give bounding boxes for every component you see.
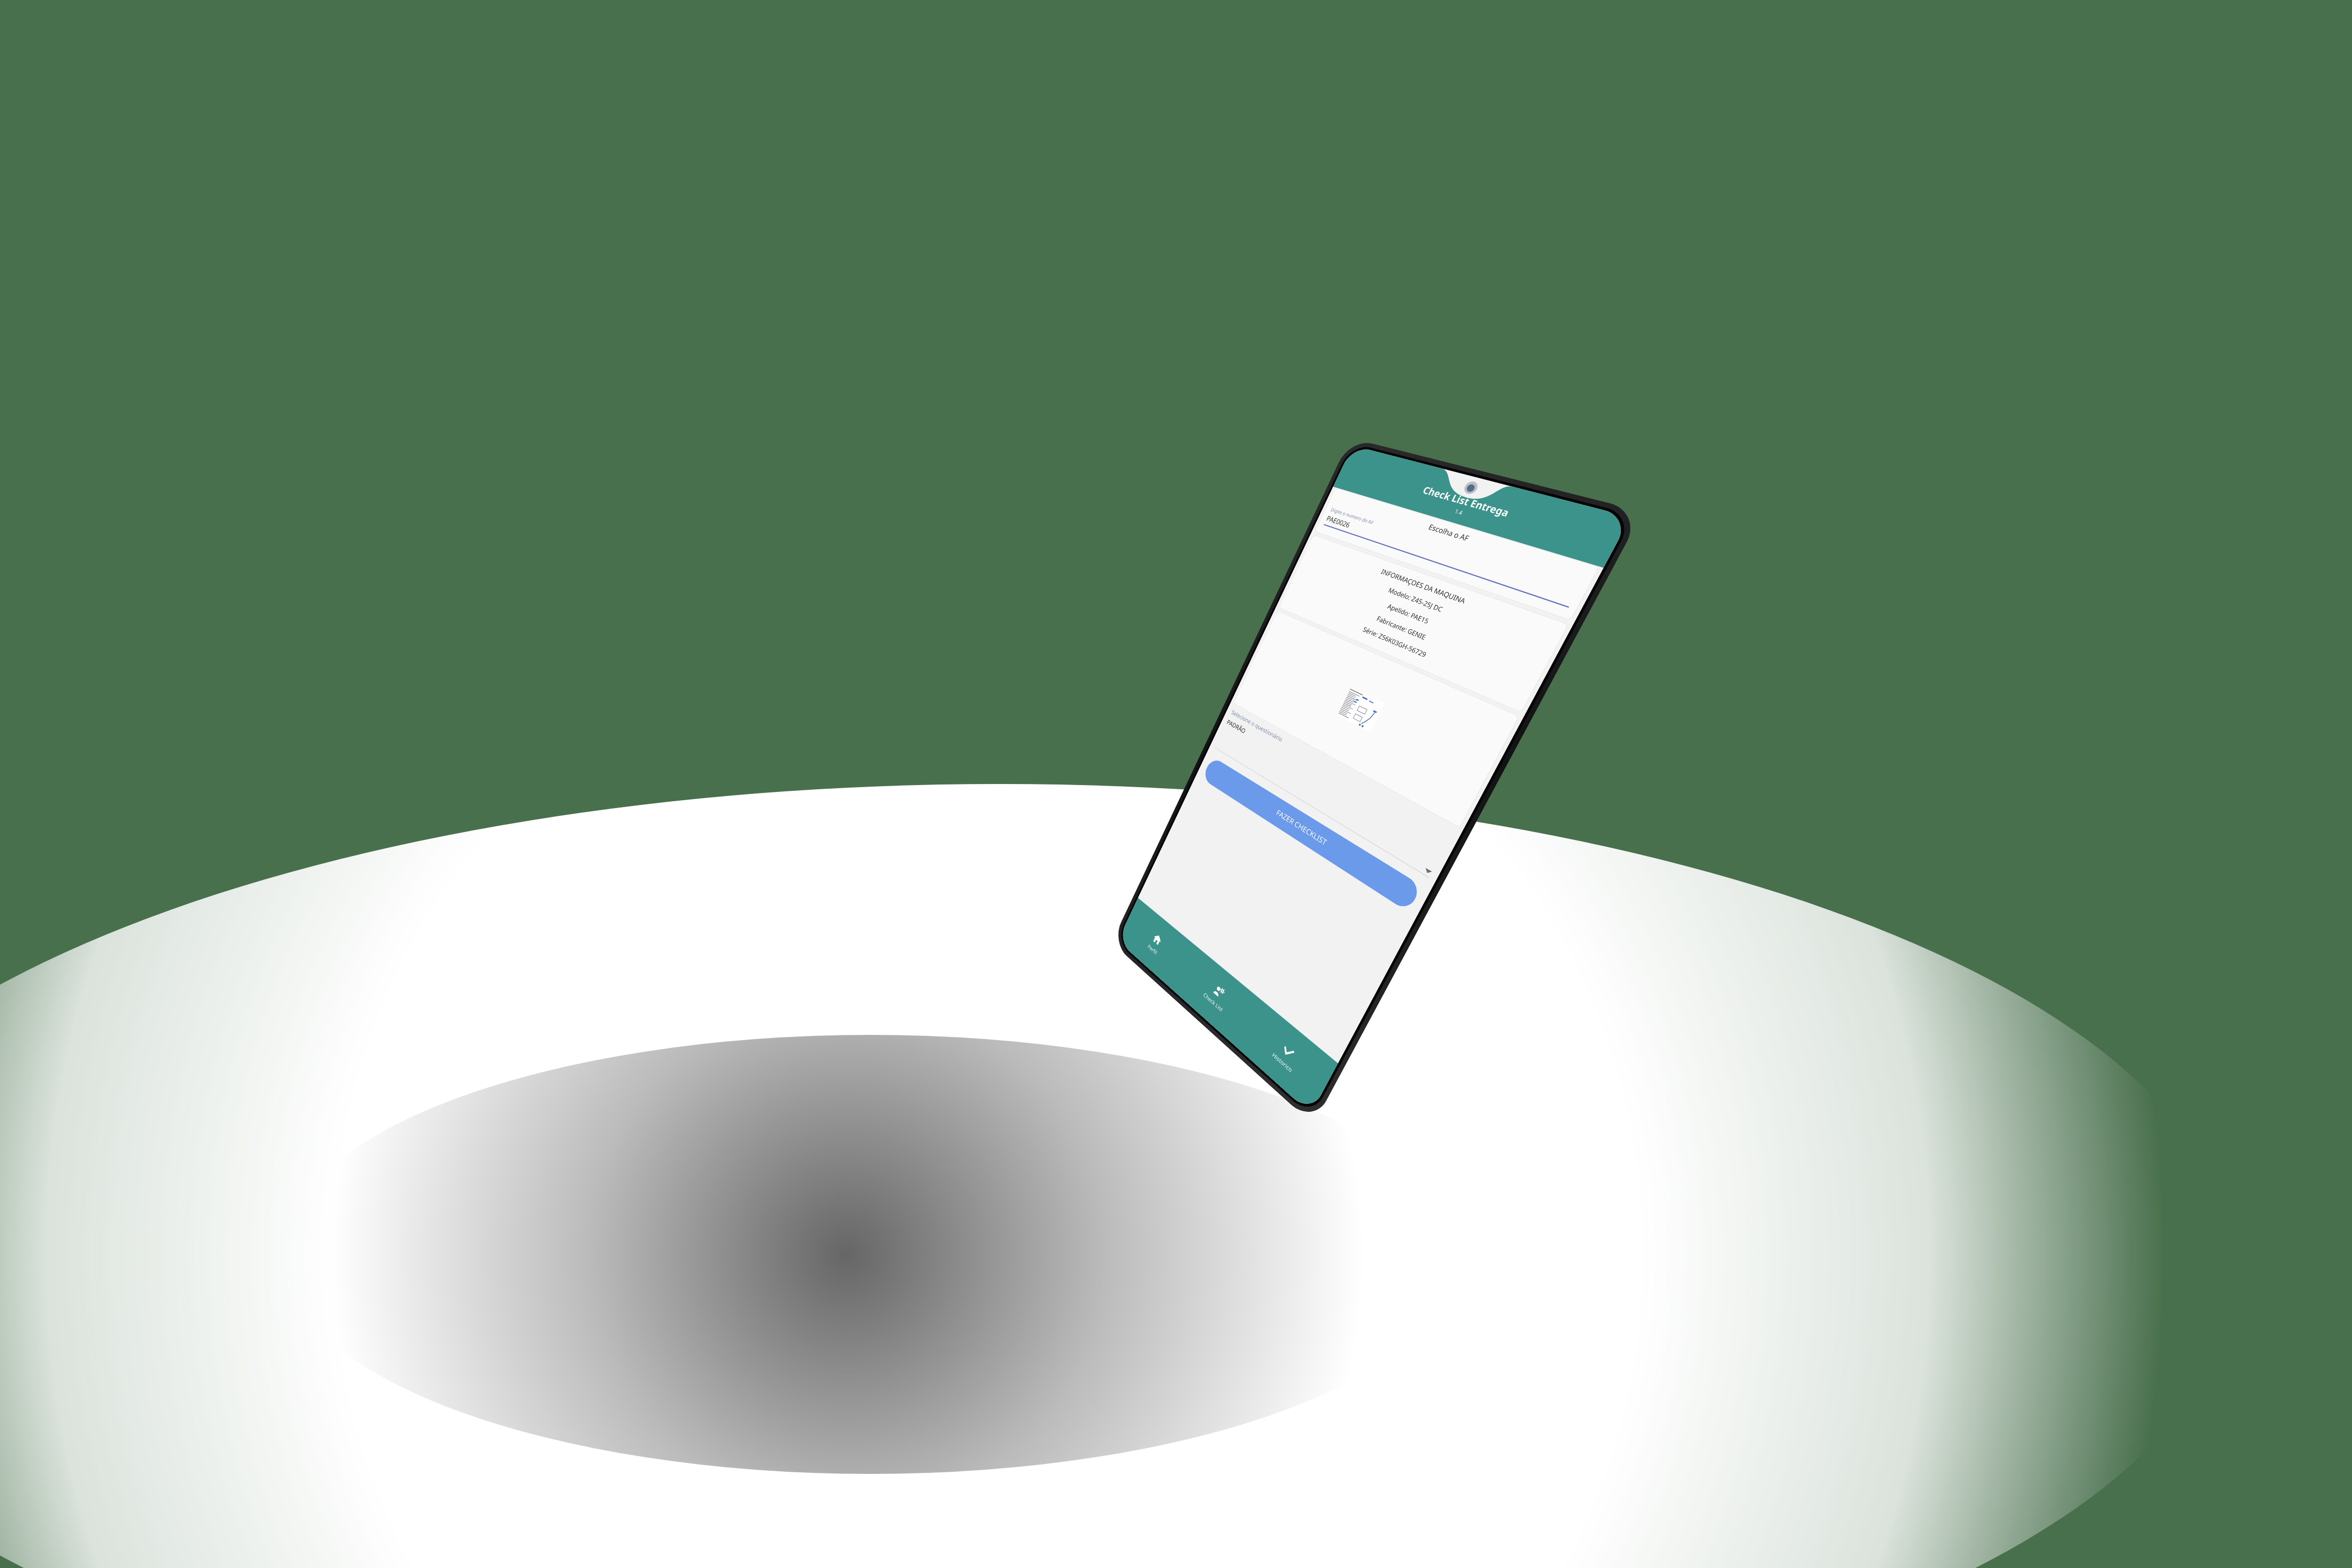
staticText: Historico [1271,1051,1294,1074]
staticText: Escolha o AF [1335,493,1589,580]
staticText: PADRÃO [1226,718,1448,850]
staticText: Apelido: PAE15 [1299,568,1541,669]
staticText: FAZER CHECKLIST [1275,807,1329,848]
button[interactable]: FAZER CHECKLIST [1202,756,1422,912]
staticText: PAE0026 [1325,513,1352,530]
button[interactable]: Historico [1238,1001,1338,1114]
staticText: Selecione o questionário [1230,708,1284,744]
staticText: Fabricante: GENIE [1293,581,1532,684]
button[interactable]: Documento da máquina [1233,610,1520,828]
button[interactable]: Check List [1174,946,1262,1048]
staticText: Perfil [1147,943,1158,956]
button[interactable]: Selecione o questionário [1215,708,1454,878]
button[interactable]: Perfil [1118,898,1196,991]
staticText: INFORMAÇOES DA MAQUINA [1312,542,1557,638]
staticText: Digite o numero do AF [1330,506,1375,526]
staticText: Check List Entrega [1421,483,1512,520]
staticText: 1.4 [1453,507,1464,516]
staticText: Série: Z56K03GH-56729 [1287,594,1524,700]
staticText: Modelo: Z45-25J DC [1306,555,1549,653]
staticText: Check List [1202,991,1224,1013]
